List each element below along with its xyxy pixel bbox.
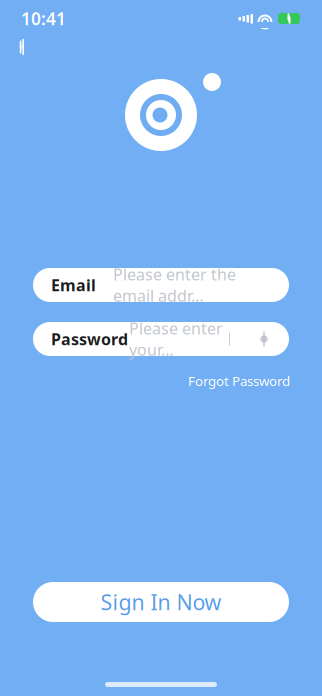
staticText: Forgot Password: [188, 372, 290, 390]
button[interactable]: Forgot Password: [188, 368, 290, 394]
button[interactable]: Back: [6, 32, 40, 62]
staticText: Password: [51, 328, 128, 350]
button[interactable]: Show password: [253, 328, 275, 350]
staticText: Sign In Now: [100, 588, 221, 616]
staticText: Please enter the email addr…: [113, 264, 236, 306]
staticText: 10:41: [21, 7, 66, 30]
staticText: Email: [51, 274, 96, 296]
button[interactable]: Sign In Now: [33, 582, 289, 622]
staticText: Please enter your…: [129, 318, 223, 360]
